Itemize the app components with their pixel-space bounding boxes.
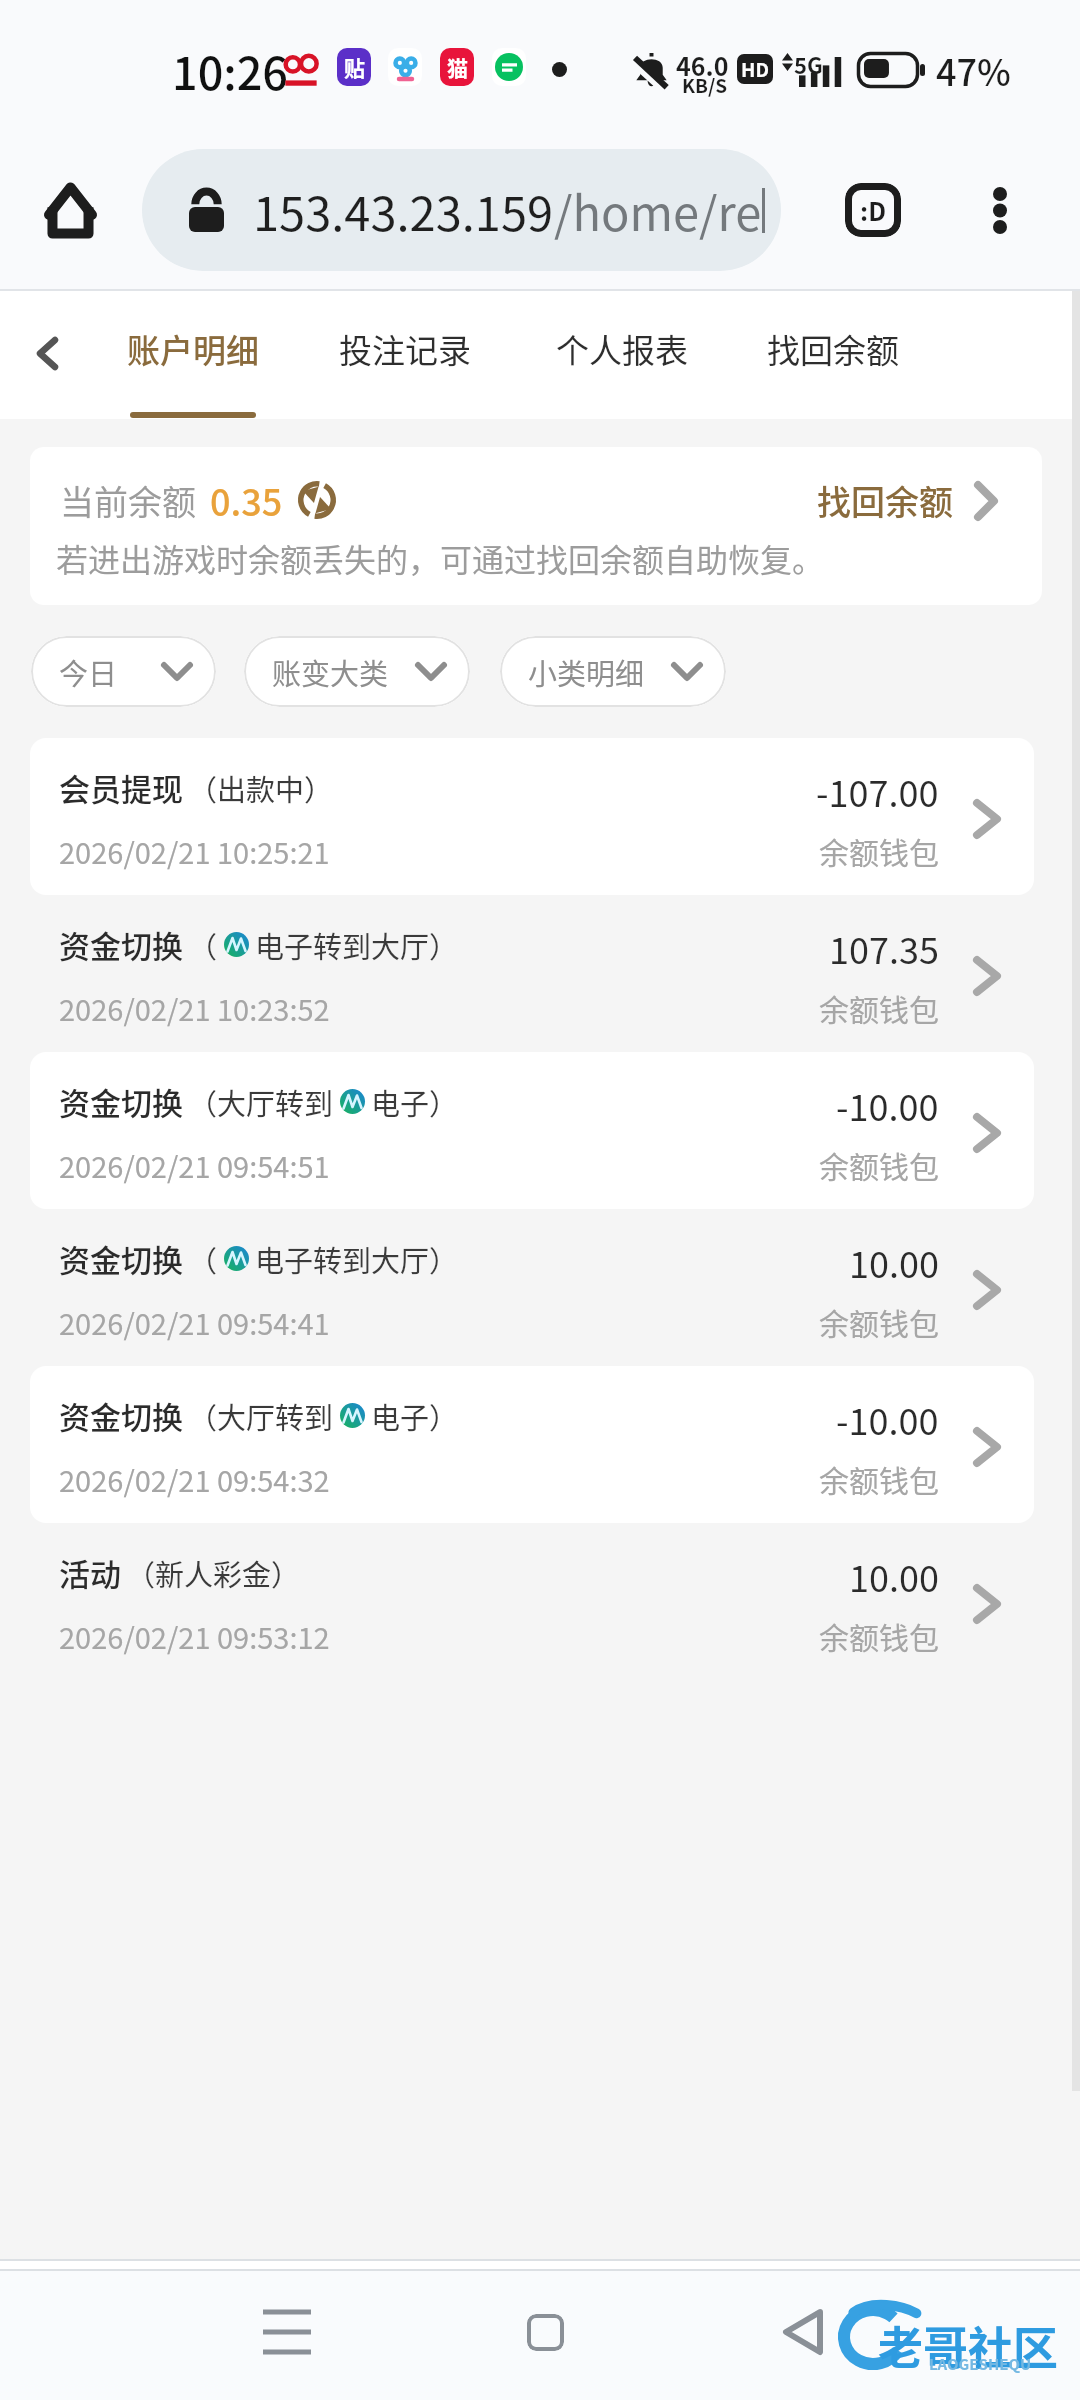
staticText: 10.00 xyxy=(849,1236,939,1288)
staticText: （大厅转到 xyxy=(188,1081,334,1123)
staticText: 2026/02/21 10:23:52 xyxy=(59,987,330,1029)
button[interactable]: 资金切换 xyxy=(30,1052,1034,1209)
staticText: 贴 xyxy=(344,52,365,82)
staticText: -10.00 xyxy=(836,1079,939,1131)
button[interactable]: 个人报表 xyxy=(537,291,707,419)
button[interactable]: 找回余额 xyxy=(817,476,997,525)
button[interactable]: Home xyxy=(484,2271,606,2393)
staticText: -10.00 xyxy=(836,1393,939,1445)
staticText: 0.35 xyxy=(210,474,283,526)
staticText: 活动 xyxy=(59,1550,121,1595)
button[interactable]: 活动 xyxy=(30,1523,1034,1680)
button[interactable]: Back xyxy=(742,2271,864,2393)
staticText: 2026/02/21 10:25:21 xyxy=(59,830,330,872)
staticText: 电子转到大厅） xyxy=(255,1238,459,1280)
button[interactable]: 投注记录 xyxy=(320,291,490,419)
button[interactable]: 153.43.23.159 xyxy=(142,149,781,271)
staticText: （ xyxy=(188,924,218,966)
staticText: 余额钱包 xyxy=(819,1300,939,1343)
staticText: 会员提现 xyxy=(59,765,183,810)
staticText: 当前余额 xyxy=(60,476,196,525)
staticText: 47% xyxy=(936,44,1011,96)
staticText: 账户明细 xyxy=(127,325,259,373)
staticText: 猫 xyxy=(447,52,468,82)
staticText: （大厅转到 xyxy=(188,1395,334,1437)
staticText: 2026/02/21 09:53:12 xyxy=(59,1615,330,1657)
staticText: 资金切换 xyxy=(59,1236,183,1281)
button[interactable]: Refresh balance xyxy=(297,480,337,520)
staticText: 找回余额 xyxy=(767,325,899,373)
staticText: （ xyxy=(188,1238,218,1280)
button[interactable]: 资金切换 xyxy=(30,1209,1034,1366)
staticText: 107.35 xyxy=(829,922,939,974)
button[interactable]: Back xyxy=(0,291,92,383)
staticText: 电子转到大厅） xyxy=(255,924,459,966)
button[interactable]: 小类明细 xyxy=(500,636,726,707)
staticText: 153.43.23.159 xyxy=(253,176,554,244)
staticText: 资金切换 xyxy=(59,922,183,967)
staticText: 10.00 xyxy=(849,1550,939,1602)
staticText: 余额钱包 xyxy=(819,1143,939,1186)
staticText: 账变大类 xyxy=(272,651,389,693)
staticText: 5G xyxy=(794,48,823,80)
button[interactable]: More options xyxy=(951,161,1049,259)
staticText: 2026/02/21 09:54:51 xyxy=(59,1144,330,1186)
staticText: LAOGESHEQU xyxy=(929,2353,1032,2375)
staticText: 电子） xyxy=(371,1395,459,1437)
staticText: 余额钱包 xyxy=(819,829,939,872)
staticText: 2026/02/21 09:54:41 xyxy=(59,1301,330,1343)
staticText: HD xyxy=(741,55,769,83)
button[interactable]: 账户明细 xyxy=(108,291,278,419)
button[interactable]: 会员提现 xyxy=(30,738,1034,895)
staticText: 找回余额 xyxy=(817,476,953,525)
staticText: 小类明细 xyxy=(528,651,645,693)
button[interactable]: Home xyxy=(20,160,120,260)
staticText: 余额钱包 xyxy=(819,1614,939,1657)
staticText: 个人报表 xyxy=(556,325,688,373)
staticText: :D xyxy=(860,192,886,228)
button[interactable]: 账变大类 xyxy=(244,636,470,707)
staticText: 余额钱包 xyxy=(819,986,939,1029)
staticText: 资金切换 xyxy=(59,1079,183,1124)
staticText: 资金切换 xyxy=(59,1393,183,1438)
button[interactable]: Tabs xyxy=(824,161,922,259)
button[interactable]: 当前余额 xyxy=(30,447,1042,605)
staticText: 若进出游戏时余额丢失的，可通过找回余额自助恢复。 xyxy=(56,535,825,581)
button[interactable]: Recent apps xyxy=(226,2271,348,2393)
staticText: -107.00 xyxy=(816,765,939,817)
staticText: 10:26 xyxy=(172,38,289,103)
staticText: （新人彩金） xyxy=(126,1552,301,1594)
staticText: 老哥社区 xyxy=(878,2313,1059,2378)
staticText: （出款中） xyxy=(188,767,334,809)
staticText: 投注记录 xyxy=(339,325,471,373)
staticText: 46.0 xyxy=(676,47,729,83)
staticText: 余额钱包 xyxy=(819,1457,939,1500)
staticText: 电子） xyxy=(371,1081,459,1123)
staticText: 2026/02/21 09:54:32 xyxy=(59,1458,330,1500)
button[interactable]: 今日 xyxy=(31,636,216,707)
staticText: /home/re xyxy=(554,176,762,244)
staticText: 今日 xyxy=(59,651,118,693)
button[interactable]: 资金切换 xyxy=(30,895,1034,1052)
button[interactable]: 找回余额 xyxy=(748,291,918,419)
button[interactable]: 资金切换 xyxy=(30,1366,1034,1523)
staticText: KB/S xyxy=(682,71,728,99)
